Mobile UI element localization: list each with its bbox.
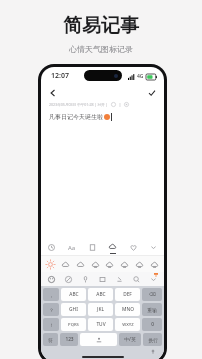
button[interactable]: Weather bbox=[107, 241, 118, 254]
staticText: 符 bbox=[48, 337, 53, 343]
button[interactable]: 重输 bbox=[142, 303, 162, 316]
staticText: 4G bbox=[137, 73, 144, 80]
button[interactable]: ？ bbox=[43, 303, 59, 316]
button[interactable]: MNO bbox=[115, 303, 140, 316]
staticText: TUV bbox=[96, 321, 106, 328]
button[interactable]: Mood bbox=[128, 242, 139, 253]
button[interactable]: Emoji bbox=[46, 274, 57, 285]
button[interactable]: DEF bbox=[115, 288, 140, 301]
button[interactable]: ABC bbox=[88, 288, 113, 301]
staticText: WXYZ bbox=[122, 322, 134, 328]
button[interactable]: Voice bbox=[80, 274, 91, 285]
staticText: PQRS bbox=[68, 322, 79, 328]
staticText: 心情天气图标记录 bbox=[69, 44, 133, 54]
staticText: ？ bbox=[49, 307, 54, 313]
staticText: 简易记事 bbox=[63, 14, 139, 38]
button[interactable]: WXYZ bbox=[115, 318, 140, 331]
button[interactable]: Collapse bbox=[148, 242, 159, 253]
button[interactable]: 0 bbox=[142, 318, 162, 331]
staticText: 0 bbox=[151, 321, 154, 328]
button[interactable]: 123 bbox=[60, 333, 78, 346]
button[interactable]: Aa bbox=[66, 242, 77, 253]
staticText: MNO bbox=[122, 306, 134, 313]
button[interactable]: ！ bbox=[43, 318, 59, 331]
button[interactable]: ABC bbox=[61, 288, 86, 301]
button[interactable]: Search bbox=[131, 274, 142, 285]
button[interactable]: Clock bbox=[46, 242, 57, 253]
button[interactable]: Weather 3 bbox=[104, 259, 115, 270]
button[interactable]: ⌫ bbox=[142, 288, 162, 301]
staticText: DEF bbox=[123, 291, 132, 298]
staticText: ABC bbox=[96, 291, 106, 298]
button[interactable]: PQRS bbox=[61, 318, 86, 331]
staticText: ⌫ bbox=[149, 292, 156, 298]
staticText: 换行 bbox=[148, 337, 158, 343]
button[interactable]: JKL bbox=[88, 303, 113, 316]
button[interactable]: GHI bbox=[61, 303, 86, 316]
staticText: | bbox=[119, 102, 121, 107]
staticText: 123 bbox=[65, 336, 74, 343]
staticText: JKL bbox=[97, 306, 104, 313]
button[interactable]: Weather 5 bbox=[134, 259, 145, 270]
button[interactable]: Weather 4 bbox=[119, 259, 130, 270]
button[interactable]: 换行 bbox=[143, 333, 162, 346]
staticText: 中/英 bbox=[124, 336, 136, 343]
button[interactable]: Back bbox=[46, 86, 60, 100]
button[interactable]: Sunny bbox=[45, 259, 56, 270]
staticText: ！ bbox=[49, 322, 54, 328]
button[interactable]: Weather 1 bbox=[75, 259, 86, 270]
button[interactable]: Weather 6 bbox=[149, 259, 160, 270]
staticText: 12:07 bbox=[51, 71, 69, 81]
staticText: GHI bbox=[69, 306, 78, 313]
button[interactable]: Dictation bbox=[149, 348, 157, 356]
staticText: ， bbox=[49, 292, 54, 298]
button[interactable]: 中/英 bbox=[119, 333, 141, 346]
button[interactable]: Weather 2 bbox=[90, 259, 101, 270]
button[interactable]: Document bbox=[87, 242, 98, 253]
button[interactable]: Save bbox=[145, 86, 159, 100]
button[interactable]: Weather 0 bbox=[60, 259, 71, 270]
button[interactable]: Image bbox=[97, 274, 108, 285]
button[interactable]: Hide keyboard bbox=[148, 274, 159, 285]
staticText: 凡事日记今天诞生啦 bbox=[49, 113, 103, 121]
button[interactable]: Translate bbox=[114, 274, 125, 285]
button[interactable]: 符 bbox=[43, 333, 58, 346]
staticText: Aa bbox=[68, 244, 76, 252]
button[interactable]: ， bbox=[43, 288, 59, 301]
staticText: ABC bbox=[69, 291, 79, 298]
button[interactable]: TUV bbox=[88, 318, 113, 331]
staticText: 重输 bbox=[147, 307, 157, 313]
button[interactable]: Mute bbox=[63, 274, 74, 285]
button[interactable] bbox=[80, 333, 117, 346]
staticText: 2023年05月03日 中午01:28 | 对开 | bbox=[49, 102, 108, 107]
